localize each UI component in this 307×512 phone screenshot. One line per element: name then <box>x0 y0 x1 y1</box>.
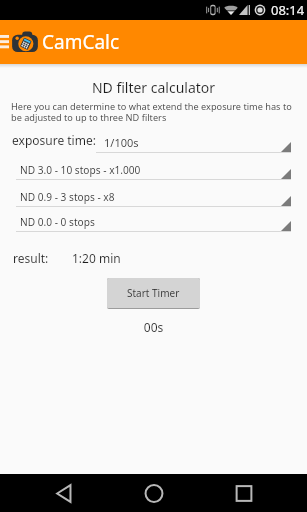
button[interactable]: ND 0.9 - 3 stops - x8 <box>16 190 291 207</box>
button[interactable]: Menu <box>0 20 9 64</box>
button[interactable]: 1/100s <box>96 135 291 153</box>
button[interactable]: Home <box>134 474 174 512</box>
staticText: Start Timer <box>127 286 180 300</box>
staticText: ND 3.0 - 10 stops - x1.000 <box>20 163 141 177</box>
button[interactable]: Back <box>44 474 84 512</box>
staticText: Here you can determine to what extend th… <box>11 100 302 123</box>
staticText: exposure time: <box>12 132 96 148</box>
button[interactable]: ND 0.0 - 0 stops <box>16 215 291 232</box>
staticText: CamCalc <box>42 29 120 55</box>
staticText: 1/100s <box>104 135 139 150</box>
staticText: 1:20 min <box>72 250 121 266</box>
staticText: ND 0.9 - 3 stops - x8 <box>20 190 115 204</box>
staticText: ND 0.0 - 0 stops <box>20 215 95 229</box>
button[interactable]: ND 3.0 - 10 stops - x1.000 <box>16 163 291 180</box>
staticText: ND filter calculator <box>0 78 307 97</box>
button[interactable]: Start Timer <box>107 278 200 308</box>
staticText: result: <box>13 250 49 266</box>
staticText: 08:14 <box>271 1 305 19</box>
staticText: 00s <box>0 319 307 335</box>
button[interactable]: Recents <box>224 474 264 512</box>
